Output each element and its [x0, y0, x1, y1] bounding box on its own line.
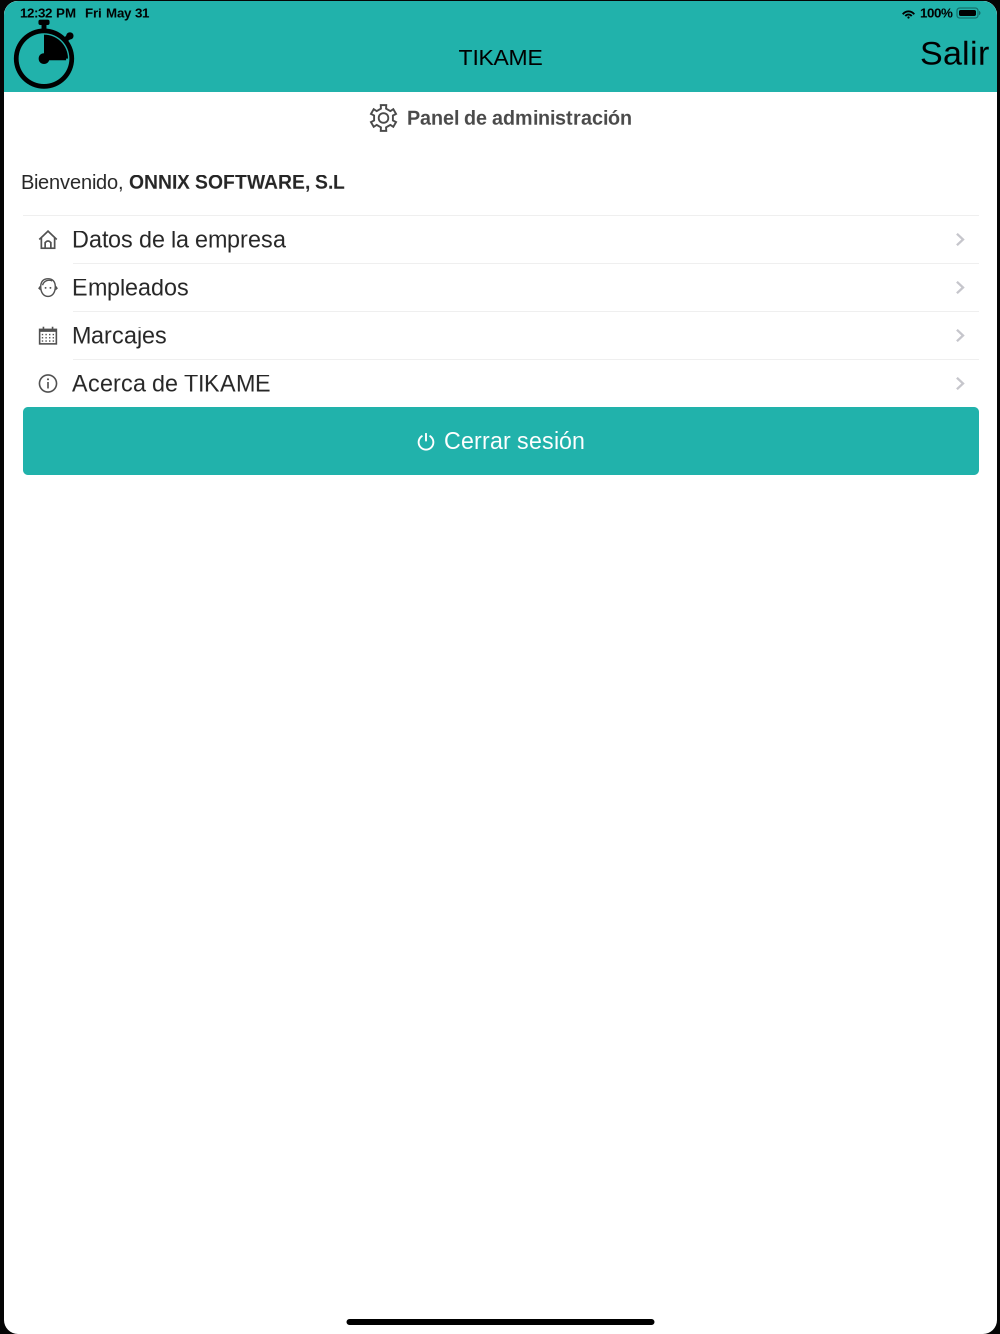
staticText: Cerrar sesión	[444, 428, 585, 454]
button[interactable]: Acerca de TIKAME	[4, 360, 997, 407]
button[interactable]: Salir	[912, 29, 997, 77]
staticText: Empleados	[72, 274, 189, 301]
staticText: ONNIX SOFTWARE, S.L	[124, 171, 345, 193]
staticText: Fri May 31	[85, 6, 149, 20]
button[interactable]: Cerrar sesión	[23, 407, 979, 475]
staticText: TIKAME	[458, 44, 542, 70]
button[interactable]: Empleados	[4, 264, 997, 311]
staticText: 100%	[920, 6, 953, 20]
staticText: Acerca de TIKAME	[72, 370, 271, 397]
button[interactable]: Datos de la empresa	[4, 216, 997, 263]
button[interactable]: Marcajes	[4, 312, 997, 359]
staticText: Panel de administración	[407, 107, 632, 129]
staticText: 12:32 PM	[20, 6, 76, 20]
staticText: Salir	[920, 34, 989, 72]
staticText: Bienvenido,	[21, 171, 124, 193]
staticText: Marcajes	[72, 322, 167, 349]
staticText: Datos de la empresa	[72, 226, 286, 253]
